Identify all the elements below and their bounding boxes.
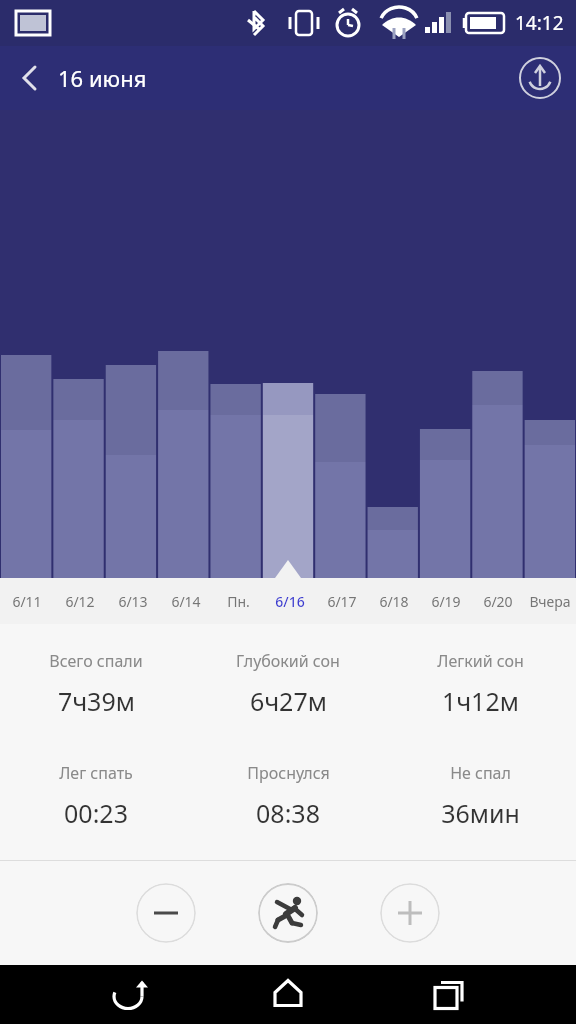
button[interactable]: 6/18: [368, 578, 420, 624]
staticText: Легкий сон: [437, 650, 524, 672]
staticText: 16 июня: [58, 63, 147, 93]
button[interactable]: 6/11: [0, 578, 53, 624]
button[interactable]: Легкий сон: [384, 650, 576, 718]
staticText: Проснулся: [247, 762, 330, 784]
button[interactable]: 6/19: [420, 578, 472, 624]
staticText: Вчера: [529, 592, 571, 611]
staticText: 6/17: [327, 592, 357, 611]
staticText: Пн.: [227, 592, 250, 611]
button[interactable]: Recents: [416, 965, 480, 1024]
button[interactable]: Пн.: [212, 578, 264, 624]
button[interactable]: Вчера: [524, 578, 576, 624]
button[interactable]: Лег спать: [0, 762, 192, 830]
button[interactable]: Home: [256, 965, 320, 1024]
staticText: Глубокий сон: [236, 650, 340, 672]
staticText: 6/13: [118, 592, 148, 611]
button[interactable]: Increase: [380, 883, 440, 943]
button[interactable]: Проснулся: [192, 762, 384, 830]
staticText: 6/11: [12, 592, 42, 611]
staticText: Лег спать: [59, 762, 133, 784]
button[interactable]: Всего спали: [0, 650, 192, 718]
staticText: 6/19: [431, 592, 461, 611]
staticText: 7ч39м: [58, 684, 135, 718]
button[interactable]: 6/17: [316, 578, 368, 624]
button[interactable]: Share: [518, 56, 562, 100]
staticText: Всего спали: [49, 650, 143, 672]
button[interactable]: Activity: [258, 883, 318, 943]
staticText: 36мин: [441, 796, 520, 830]
button[interactable]: Глубокий сон: [192, 650, 384, 718]
button[interactable]: 6/14: [159, 578, 212, 624]
staticText: Не спал: [450, 762, 511, 784]
button[interactable]: Decrease: [136, 883, 196, 943]
staticText: 1ч12м: [442, 684, 519, 718]
staticText: 00:23: [64, 796, 128, 830]
button[interactable]: Back: [96, 965, 160, 1024]
button[interactable]: 6/16: [264, 578, 316, 624]
button[interactable]: 6/20: [472, 578, 524, 624]
staticText: 6ч27м: [250, 684, 327, 718]
button[interactable]: Back: [6, 54, 54, 102]
staticText: 6/12: [65, 592, 95, 611]
button[interactable]: 6/13: [106, 578, 159, 624]
staticText: 08:38: [256, 796, 320, 830]
staticText: 14:12: [515, 10, 564, 36]
staticText: 6/14: [171, 592, 201, 611]
button[interactable]: Не спал: [384, 762, 576, 830]
staticText: 6/20: [483, 592, 513, 611]
staticText: 6/16: [275, 592, 305, 611]
button[interactable]: 6/12: [53, 578, 106, 624]
staticText: 6/18: [379, 592, 409, 611]
